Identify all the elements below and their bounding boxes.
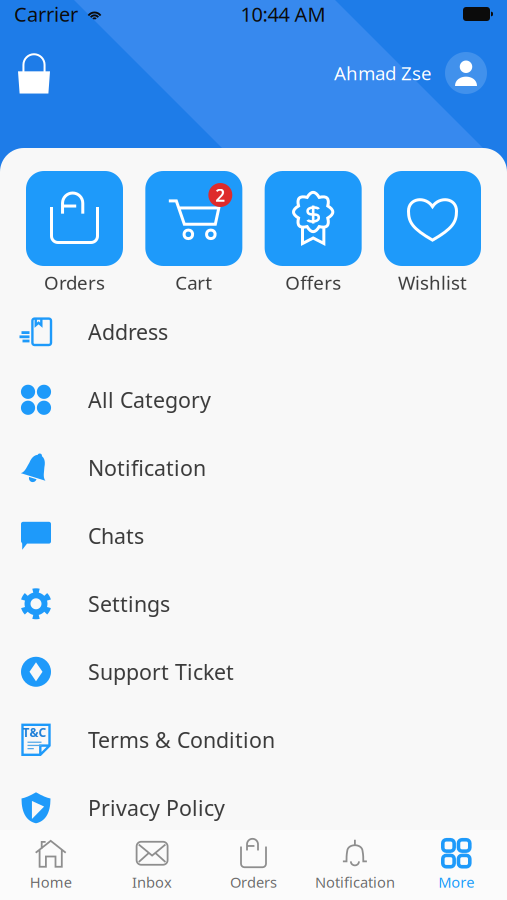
staticText: Settings [88,590,170,618]
button[interactable]: Notification [0,434,507,502]
button[interactable]: Settings [0,570,507,638]
staticText: More [438,872,474,892]
staticText: Address [88,318,168,346]
staticText: 10:44 AM [240,1,325,27]
staticText: Notification [88,454,206,482]
staticText: 2 [215,183,225,206]
staticText: Home [30,872,72,892]
button[interactable]: Support Ticket [0,638,507,706]
button[interactable]: Address [0,298,507,366]
button[interactable]: Chats [0,502,507,570]
staticText: Cart [175,270,212,295]
button[interactable]: 2 [145,171,242,295]
button[interactable]: Offers [265,171,362,295]
staticText: Orders [44,270,105,295]
button[interactable]: Notification [304,838,406,892]
staticText: T&C [22,724,46,740]
button[interactable]: Orders [26,171,123,295]
button[interactable]: Wishlist [384,171,481,295]
staticText: Carrier [14,1,78,27]
staticText: Inbox [132,872,172,892]
button[interactable]: Orders [203,838,304,892]
staticText: Ahmad Zse [334,61,432,85]
button[interactable]: Privacy Policy [0,774,507,842]
staticText: Privacy Policy [88,794,225,822]
staticText: Terms & Condition [88,726,275,754]
staticText: Wishlist [398,270,467,295]
button[interactable]: More [406,838,507,892]
button[interactable]: Inbox [101,838,203,892]
button[interactable]: T&C [0,706,507,774]
staticText: Orders [230,872,277,892]
staticText: Chats [88,522,144,550]
button[interactable]: Home [0,838,101,892]
button[interactable]: Ahmad Zse [334,52,487,94]
staticText: Offers [285,270,341,295]
staticText: Support Ticket [88,658,234,686]
staticText: Notification [315,872,395,892]
staticText: All Category [88,386,211,414]
button[interactable]: Store [18,52,50,93]
button[interactable]: All Category [0,366,507,434]
